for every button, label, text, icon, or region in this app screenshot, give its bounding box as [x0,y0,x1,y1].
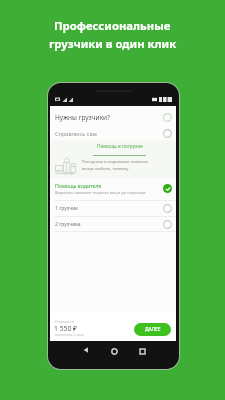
button[interactable]: Recents [134,343,150,359]
button[interactable]: Back [78,342,94,358]
staticText: 1 грузчик [55,205,78,212]
staticText: Стоимость [55,319,74,324]
staticText: ДАЛЕЕ [145,326,161,333]
button[interactable]: 1 грузчик [50,201,176,216]
button[interactable]: 2 грузчика [50,217,176,232]
staticText: 2 грузчика [55,221,81,228]
staticText: Нужны грузчики? [55,113,110,122]
staticText: включено 2 часа [55,332,85,337]
button[interactable]: Нужны грузчики? [50,109,176,126]
button[interactable]: Помощь водителя [50,178,176,198]
staticText: Помощь водителя [55,182,102,189]
staticText: Справлюсь сам [55,130,97,138]
button[interactable]: Справлюсь сам [50,126,176,141]
button[interactable]: Home [106,343,122,359]
staticText: Помощь в погрузке [97,143,143,150]
staticText: 1 550 ₽ [54,324,78,333]
button[interactable]: ДАЛЕЕ [134,323,171,336]
staticText: Разгрузим и поднимем тяжелые вещи: мебел… [82,159,152,171]
staticText: грузчики в один клик [49,36,177,51]
staticText: Профессиональные [54,18,171,33]
staticText: Водитель поможет поднять вещи до подъезд… [55,190,146,195]
